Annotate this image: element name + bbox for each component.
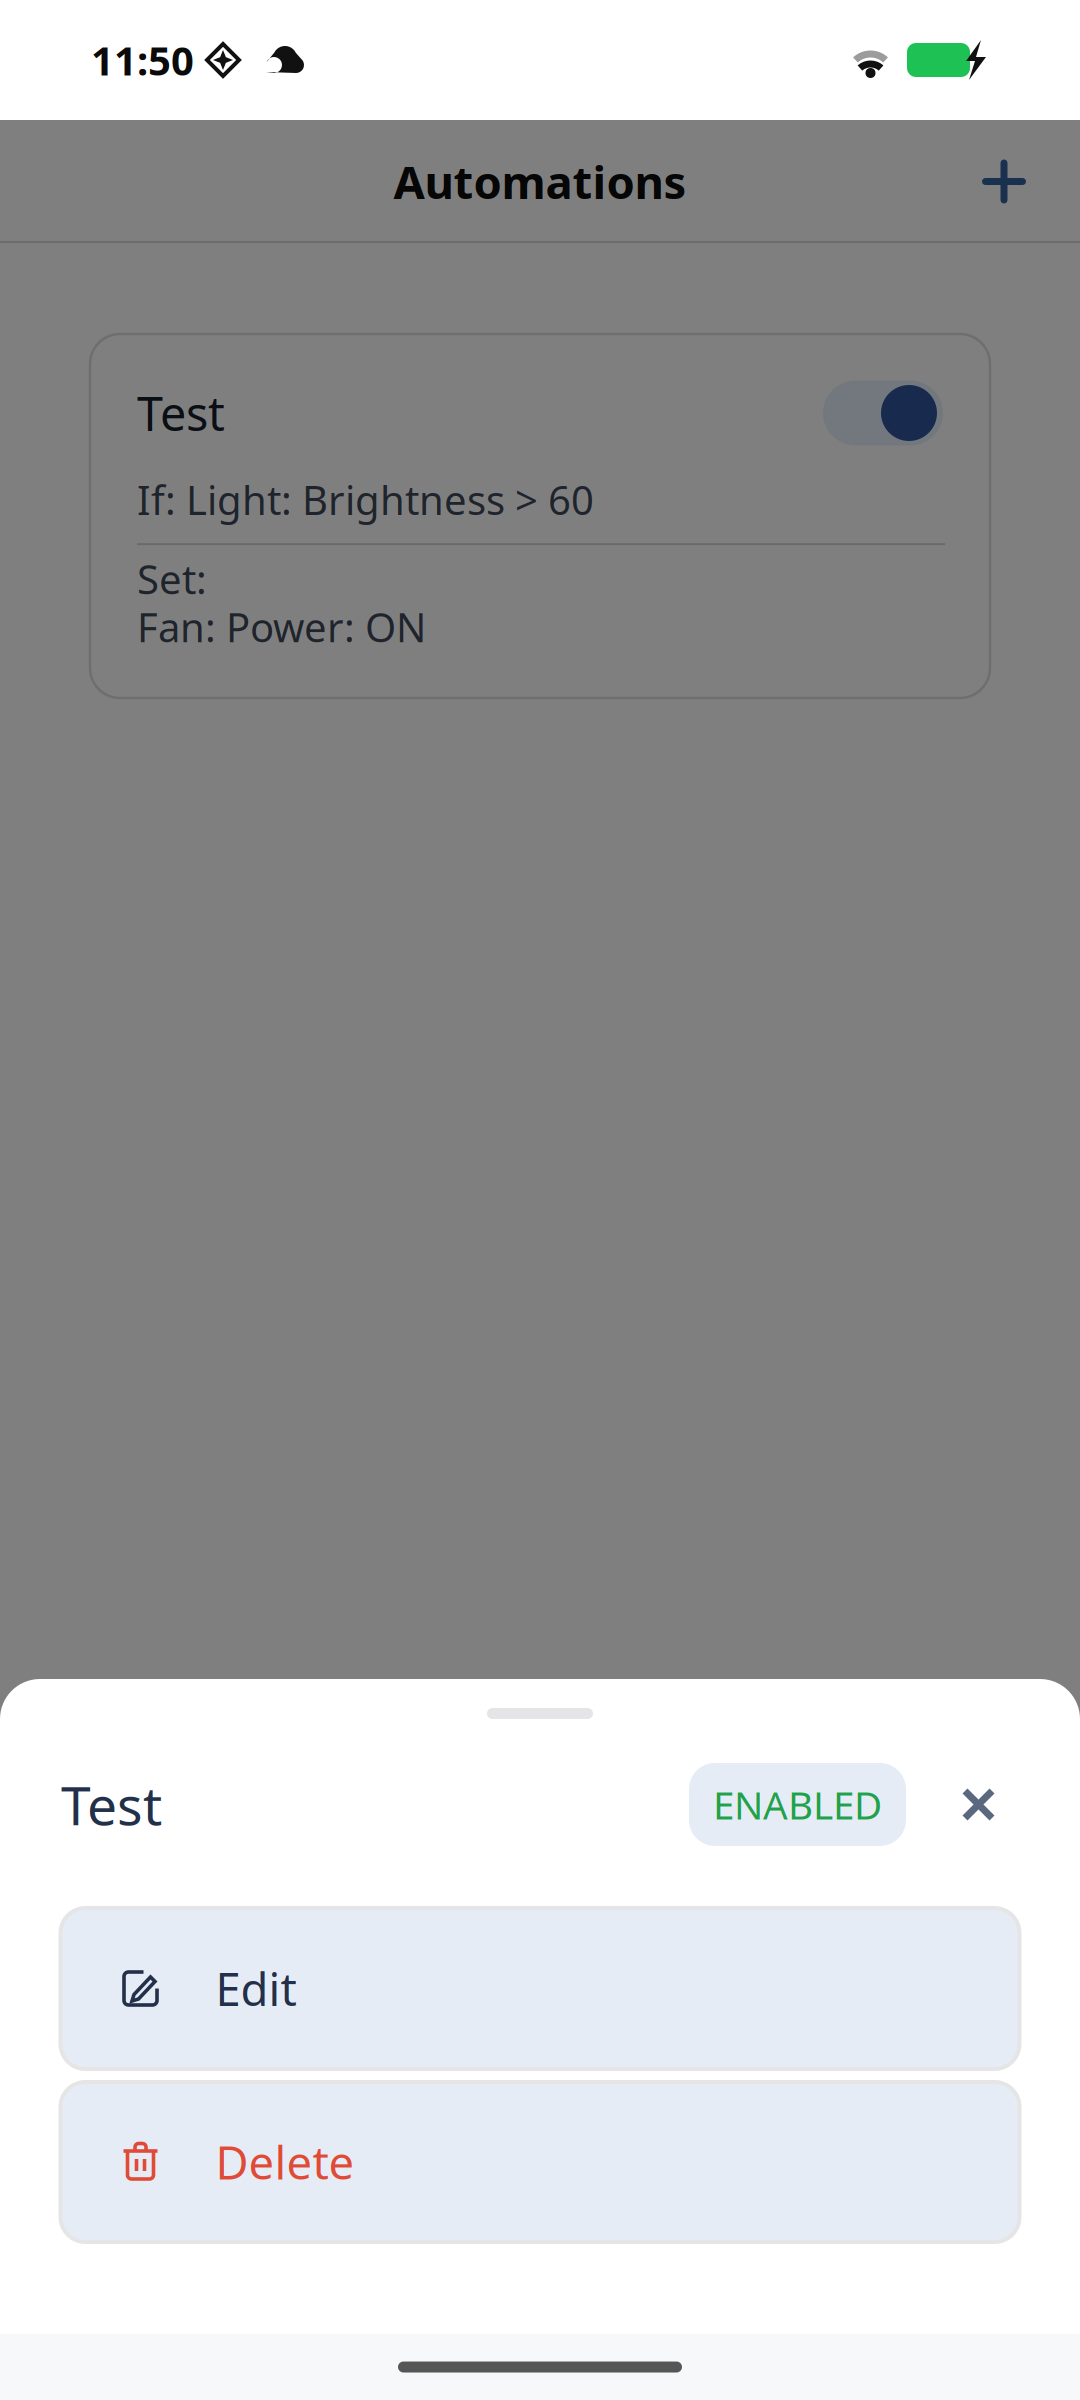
staticText: If: Light: Brightness > 60 [137, 473, 594, 526]
staticText: Edit [215, 1958, 296, 2019]
button[interactable]: Enable automation [823, 380, 943, 445]
button[interactable]: Edit [60, 1908, 1019, 2069]
staticText: Delete [215, 2132, 354, 2192]
staticText: Set: Fan: Power: ON [137, 552, 426, 653]
button[interactable]: Close [938, 1763, 1019, 1846]
staticText: Test [61, 1769, 162, 1840]
staticText: ENABLED [713, 1779, 882, 1830]
staticText: Automations [393, 151, 686, 212]
button[interactable]: ENABLED [689, 1763, 906, 1846]
button[interactable]: Add automation [928, 120, 1080, 243]
staticText: Test [137, 382, 225, 444]
staticText: 11:50 [91, 33, 194, 86]
button[interactable]: Delete [60, 2082, 1019, 2242]
